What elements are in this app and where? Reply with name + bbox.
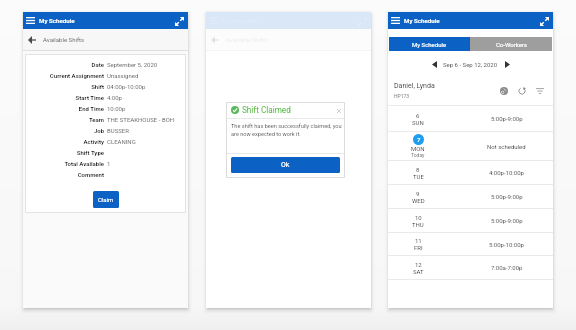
staticText: Comment bbox=[77, 171, 104, 178]
button[interactable]: Claim bbox=[93, 191, 119, 208]
button[interactable]: 7 bbox=[388, 132, 553, 160]
button[interactable]: Menu bbox=[389, 14, 402, 27]
button[interactable]: Back bbox=[25, 33, 39, 47]
button[interactable]: Ok bbox=[231, 157, 340, 173]
button[interactable]: 9 bbox=[388, 185, 553, 208]
button[interactable]: Expand bbox=[536, 13, 552, 29]
staticText: 4:00p bbox=[107, 94, 122, 101]
staticText: 6 bbox=[416, 112, 420, 119]
staticText: SUN bbox=[412, 119, 424, 126]
staticText: Sep 6 - Sep 12, 2020 bbox=[443, 61, 498, 68]
staticText: Claim bbox=[98, 196, 114, 203]
staticText: 7 bbox=[417, 136, 421, 143]
staticText: September 5, 2020 bbox=[107, 61, 158, 68]
staticText: 5:00p-9:00p bbox=[491, 217, 523, 224]
staticText: 4:00p-10:00p bbox=[489, 169, 524, 176]
button[interactable]: Close bbox=[334, 106, 343, 115]
staticText: 10:00p bbox=[107, 105, 126, 112]
staticText: End Time bbox=[78, 105, 104, 112]
staticText: THU bbox=[412, 221, 424, 228]
staticText: 5:00p-9:00p bbox=[491, 193, 523, 200]
staticText: 04:00p-10:00p bbox=[107, 83, 146, 90]
staticText: Shift Type bbox=[76, 149, 104, 156]
button[interactable]: Expand bbox=[171, 13, 187, 29]
staticText: Shift Claimed bbox=[242, 105, 291, 115]
staticText: The shift has been successfully claimed,… bbox=[231, 123, 343, 137]
staticText: Available Shifts bbox=[43, 36, 85, 43]
staticText: Ok bbox=[281, 161, 290, 169]
staticText: 1 bbox=[107, 160, 111, 167]
button[interactable]: Refresh bbox=[515, 84, 529, 98]
staticText: My Schedule bbox=[404, 17, 440, 24]
button[interactable]: 10 bbox=[388, 209, 553, 232]
staticText: Date bbox=[91, 61, 104, 68]
button[interactable]: Back bbox=[208, 33, 222, 47]
staticText: 11 bbox=[415, 237, 422, 244]
staticText: Daniel, Lynda bbox=[394, 82, 435, 90]
staticText: 12 bbox=[415, 261, 422, 268]
staticText: Activity bbox=[83, 138, 104, 145]
staticText: Total Available bbox=[64, 160, 104, 167]
staticText: Available Shifts bbox=[226, 36, 268, 43]
button[interactable]: Next week bbox=[498, 55, 516, 73]
button[interactable]: Previous week bbox=[425, 55, 443, 73]
staticText: 7:00a-7:00p bbox=[491, 264, 523, 271]
button[interactable]: 6 bbox=[388, 106, 553, 131]
staticText: Start Time bbox=[75, 94, 104, 101]
staticText: Current Assignment bbox=[49, 72, 104, 79]
staticText: 5:00p-9:00p bbox=[491, 115, 523, 122]
staticText: 9 bbox=[416, 190, 420, 197]
staticText: WED bbox=[412, 197, 425, 204]
staticText: Team bbox=[88, 116, 104, 123]
button[interactable]: 8 bbox=[388, 161, 553, 184]
button[interactable]: Language bbox=[497, 84, 511, 98]
staticText: 5:00p-10:00p bbox=[489, 241, 524, 248]
staticText: Today bbox=[411, 152, 425, 158]
staticText: BUSSER bbox=[107, 127, 129, 134]
staticText: 8 bbox=[416, 166, 420, 173]
staticText: 10 bbox=[415, 214, 422, 221]
button[interactable]: 11 bbox=[388, 233, 553, 255]
staticText: MON bbox=[411, 145, 425, 152]
staticText: Not scheduled bbox=[487, 143, 526, 150]
staticText: HP173 bbox=[394, 93, 410, 99]
button[interactable]: Co-Workers bbox=[470, 37, 552, 51]
staticText: Unassigned bbox=[107, 72, 139, 79]
staticText: CLEANING bbox=[107, 138, 136, 145]
button[interactable]: 12 bbox=[388, 256, 553, 279]
button[interactable]: My Schedule bbox=[389, 37, 470, 51]
staticText: FRI bbox=[414, 244, 423, 251]
button[interactable]: Filter bbox=[533, 84, 547, 98]
staticText: My Schedule bbox=[412, 41, 447, 48]
staticText: TUE bbox=[413, 173, 424, 180]
staticText: Shift bbox=[91, 83, 104, 90]
staticText: Job bbox=[93, 127, 104, 134]
staticText: Co-Workers bbox=[496, 41, 527, 48]
staticText: My Schedule bbox=[39, 17, 75, 24]
staticText: SAT bbox=[413, 268, 424, 275]
button[interactable]: Menu bbox=[24, 14, 37, 27]
staticText: THE STEAKHOUSE - BOH bbox=[107, 116, 175, 123]
